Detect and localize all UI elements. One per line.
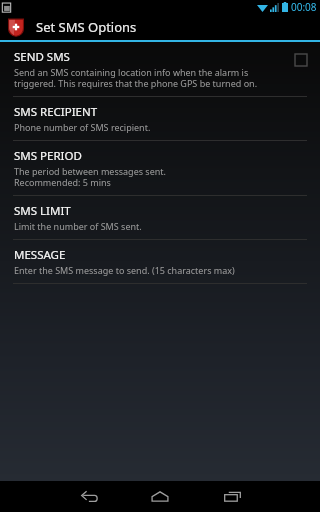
staticText: The period between messages sent. Recomm… — [14, 165, 166, 188]
button[interactable]: MESSAGE — [0, 240, 320, 283]
staticText: Send an SMS containing location info whe… — [14, 66, 284, 89]
button[interactable]: SMS PERIOD — [0, 141, 320, 195]
staticText: Limit the number of SMS sent. — [14, 220, 142, 232]
button[interactable]: SMS LIMIT — [0, 196, 320, 239]
staticText: SMS LIMIT — [14, 203, 71, 219]
button[interactable]: Recent apps — [209, 481, 255, 512]
staticText: Set SMS Options — [36, 18, 137, 36]
staticText: Enter the SMS message to send. (15 chara… — [14, 264, 235, 276]
staticText: Phone number of SMS recipient. — [14, 121, 151, 133]
button[interactable]: SEND SMS — [0, 42, 320, 96]
button[interactable]: Send SMS toggle — [294, 53, 308, 67]
staticText: SMS RECIPIENT — [14, 104, 98, 120]
button[interactable]: Back — [65, 481, 111, 512]
staticText: SMS PERIOD — [14, 148, 82, 164]
button[interactable]: Set SMS Options — [0, 14, 320, 40]
staticText: 00:08 — [291, 0, 317, 14]
staticText: MESSAGE — [14, 247, 66, 263]
button[interactable]: Home — [137, 481, 183, 512]
button[interactable]: SMS RECIPIENT — [0, 97, 320, 140]
staticText: SEND SMS — [14, 49, 70, 65]
